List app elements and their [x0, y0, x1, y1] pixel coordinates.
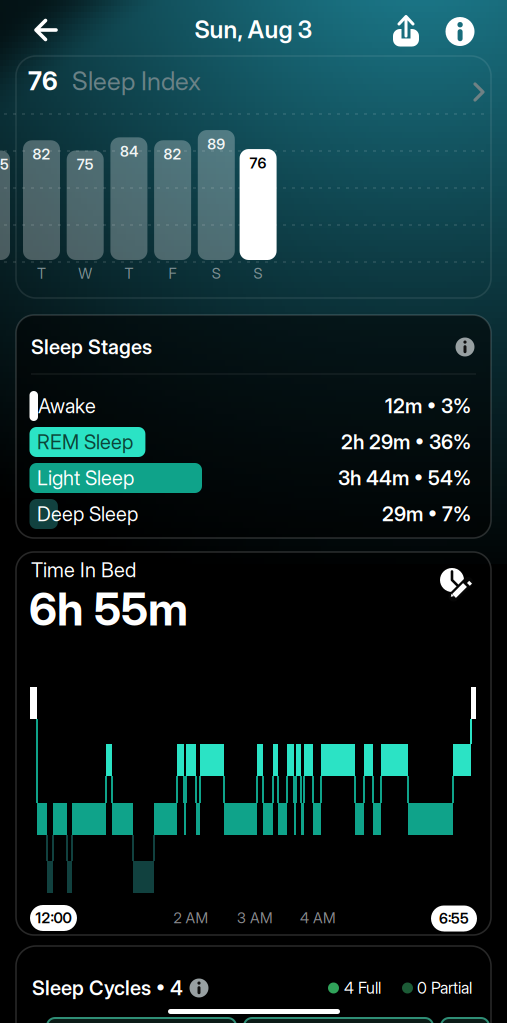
button[interactable]: 76	[16, 54, 491, 110]
button[interactable]: 82	[154, 140, 191, 260]
staticText: Sleep Stages	[31, 335, 152, 359]
staticText: 2h 29m • 36%	[341, 430, 471, 454]
staticText: Deep Sleep	[37, 502, 138, 526]
staticText: 3h 44m • 54%	[338, 466, 471, 490]
staticText: 89	[207, 135, 225, 153]
staticText: Time In Bed	[31, 558, 136, 582]
staticText: 0 Partial	[417, 979, 472, 997]
staticText: 84	[120, 143, 138, 160]
staticText: 29m • 7%	[382, 502, 471, 526]
staticText: 6h 55m	[29, 582, 188, 636]
staticText: 6:55	[439, 910, 469, 927]
staticText: Light Sleep	[37, 466, 134, 490]
button[interactable]: 84	[110, 137, 147, 260]
staticText: 82	[32, 146, 50, 163]
staticText: 2 AM	[173, 909, 208, 927]
button[interactable]	[439, 567, 473, 601]
staticText: Awake	[38, 394, 96, 418]
button[interactable]	[26, 17, 66, 43]
staticText: T	[124, 265, 133, 282]
staticText: Sun, Aug 3	[194, 15, 312, 44]
staticText: 75	[77, 156, 94, 173]
staticText: 3 AM	[237, 909, 273, 927]
button[interactable]: 12:00	[30, 905, 77, 931]
button[interactable]	[188, 977, 210, 999]
staticText: S	[254, 265, 263, 282]
staticText: T	[37, 265, 46, 282]
staticText: 12m • 3%	[385, 394, 471, 418]
button[interactable]: 75	[67, 150, 104, 260]
staticText: 4 Full	[344, 979, 381, 997]
staticText: 76	[250, 154, 267, 172]
staticText: Sleep Index	[72, 66, 201, 96]
staticText: 82	[164, 146, 182, 163]
staticText: W	[78, 265, 92, 282]
staticText: Sleep Cycles • 4	[32, 976, 183, 1000]
staticText: 5	[0, 156, 9, 173]
staticText: 4 AM	[300, 909, 336, 927]
staticText: REM Sleep	[37, 430, 133, 454]
button[interactable]	[390, 12, 422, 50]
button[interactable]: 76	[240, 149, 277, 260]
staticText: 12:00	[35, 909, 71, 927]
staticText: F	[169, 265, 177, 282]
staticText: S	[212, 265, 221, 282]
button[interactable]	[445, 16, 475, 46]
button[interactable]: 89	[198, 130, 235, 260]
button[interactable]	[454, 336, 476, 358]
staticText: 76	[28, 66, 58, 96]
button[interactable]: 6:55	[431, 905, 477, 931]
button[interactable]: 82	[23, 140, 60, 260]
